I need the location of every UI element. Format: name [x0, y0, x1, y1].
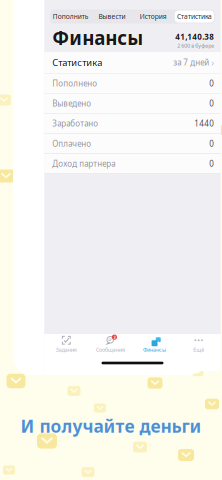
staticText: 0: [209, 78, 214, 89]
staticText: 0: [209, 158, 214, 169]
button[interactable]: Статистика: [174, 9, 215, 23]
button[interactable]: Доход партнера: [44, 154, 221, 173]
staticText: Ещё: [193, 346, 204, 353]
button[interactable]: История: [132, 9, 174, 23]
staticText: Статистика: [52, 56, 102, 69]
staticText: Доход партнера: [52, 158, 115, 169]
staticText: Выведено: [52, 98, 91, 109]
button[interactable]: 2: [88, 334, 132, 355]
button[interactable]: Статистика: [44, 52, 221, 73]
staticText: 0: [209, 138, 214, 149]
staticText: История: [140, 12, 167, 21]
staticText: ›: [211, 56, 214, 69]
staticText: 2: [113, 334, 115, 340]
staticText: 1440: [194, 118, 214, 129]
staticText: И получайте деньги: [20, 414, 201, 437]
staticText: за 7 дней: [173, 57, 209, 68]
staticText: Сообщения: [96, 346, 125, 353]
button[interactable]: Задания: [44, 334, 88, 355]
button[interactable]: Оплачено: [44, 134, 221, 153]
button[interactable]: Пополнить: [50, 9, 91, 23]
staticText: Финансы: [52, 25, 143, 50]
staticText: Пополнено: [52, 78, 97, 89]
button[interactable]: Пополнено: [44, 73, 221, 93]
staticText: 0: [209, 98, 214, 109]
staticText: Финансы: [143, 346, 166, 353]
staticText: Заработано: [52, 118, 98, 129]
staticText: Статистика: [177, 12, 212, 21]
staticText: Оплачено: [52, 138, 91, 149]
button[interactable]: Вывести: [91, 9, 132, 23]
button[interactable]: Финансы: [132, 334, 177, 355]
button[interactable]: Выведено: [44, 94, 221, 113]
staticText: Задания: [56, 346, 77, 353]
staticText: Пополнить: [53, 12, 89, 21]
staticText: 41,140.38: [175, 31, 214, 42]
staticText: 2 600 в буфере: [177, 42, 214, 49]
staticText: Вывести: [98, 12, 125, 21]
button[interactable]: Ещё: [177, 334, 221, 355]
button[interactable]: Заработано: [44, 114, 221, 133]
